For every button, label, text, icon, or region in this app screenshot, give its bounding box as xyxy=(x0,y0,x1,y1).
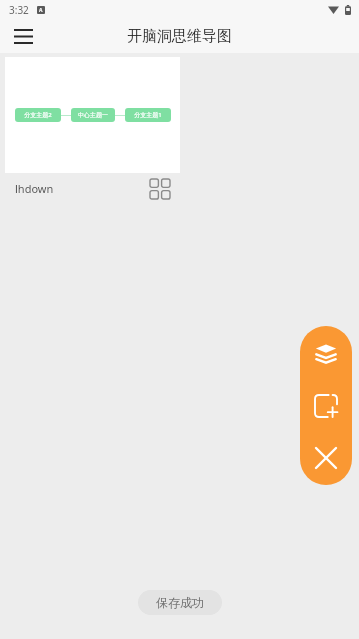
staticText: 开脑洞思维导图 xyxy=(127,27,232,46)
button[interactable]: Layers xyxy=(300,327,352,379)
staticText: 3:32 xyxy=(9,3,29,17)
staticText: 分支主题2 xyxy=(24,111,52,119)
button[interactable]: Menu xyxy=(6,19,40,53)
button[interactable]: Add node xyxy=(300,380,352,432)
button[interactable]: Close xyxy=(300,432,352,484)
button[interactable]: 分支主题2 xyxy=(5,57,180,173)
staticText: lhdown xyxy=(15,181,54,196)
staticText: 保存成功 xyxy=(156,595,204,610)
staticText: 中心主题一 xyxy=(78,111,108,119)
staticText: A xyxy=(39,7,43,14)
staticText: 分支主题1 xyxy=(134,111,162,119)
button[interactable]: More options xyxy=(146,175,174,203)
